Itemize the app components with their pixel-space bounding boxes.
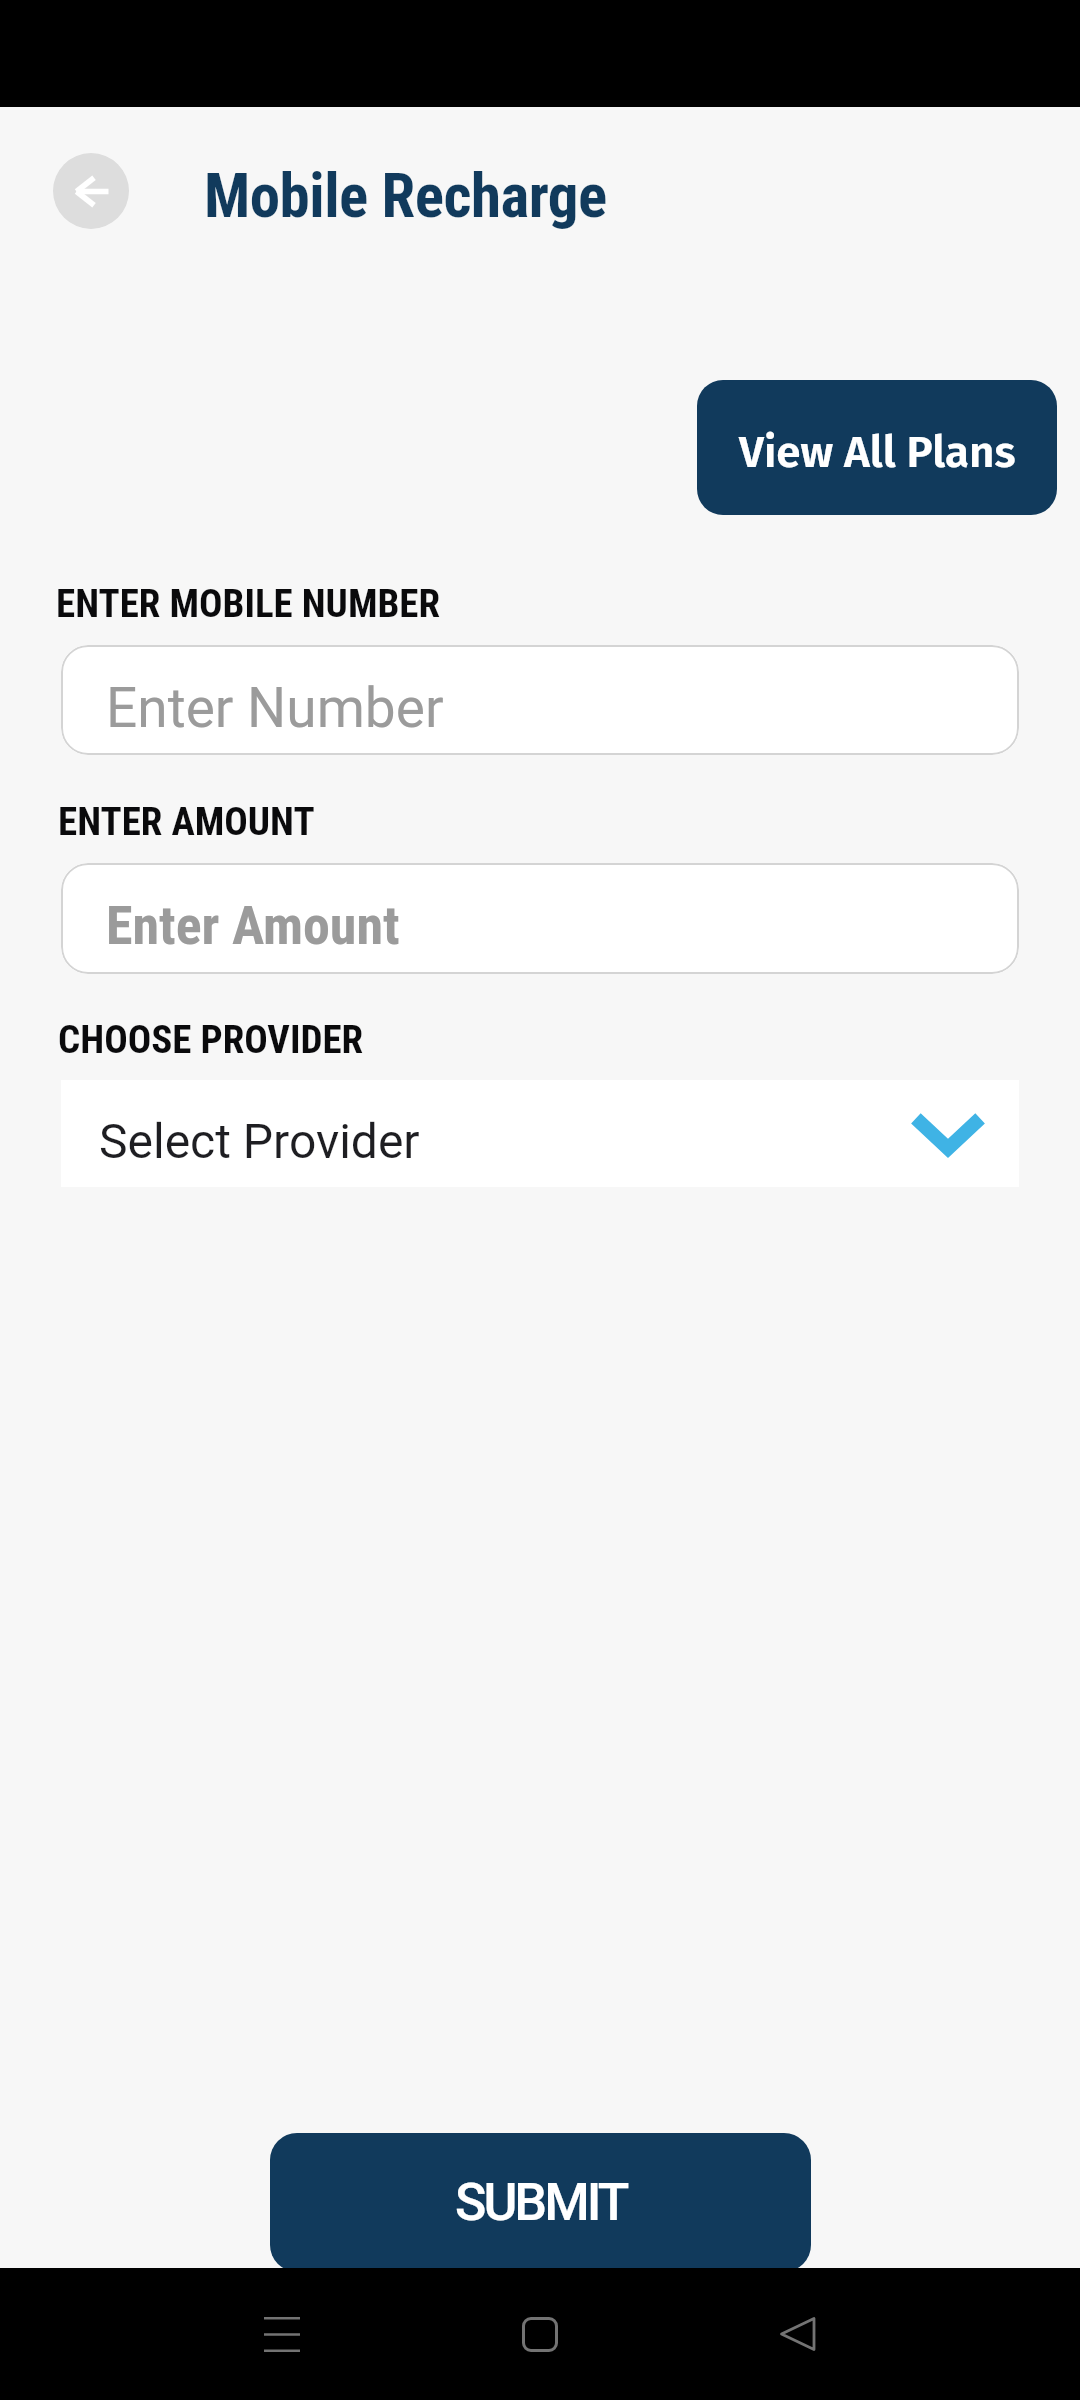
button[interactable]: Select Provider (61, 1080, 1019, 1187)
button[interactable]: Recent apps (212, 2269, 352, 2399)
button[interactable]: SUBMIT (270, 2133, 811, 2272)
staticText: View All Plans (739, 426, 1016, 479)
button[interactable]: Back (53, 153, 129, 229)
staticText: ENTER AMOUNT (58, 799, 315, 845)
button[interactable]: Home (470, 2269, 610, 2399)
staticText: CHOOSE PROVIDER (58, 1017, 364, 1063)
staticText: ENTER MOBILE NUMBER (56, 581, 441, 627)
button[interactable]: Enter Number (61, 645, 1019, 755)
button[interactable]: Back (727, 2269, 867, 2399)
button[interactable]: View All Plans (697, 380, 1057, 515)
staticText: Mobile Recharge (204, 160, 607, 231)
staticText: SUBMIT (455, 2172, 627, 2233)
button[interactable]: Enter Amount (61, 863, 1019, 974)
staticText: Enter Amount (106, 894, 400, 957)
staticText: Enter Number (106, 676, 444, 740)
staticText: Select Provider (99, 1113, 420, 1169)
